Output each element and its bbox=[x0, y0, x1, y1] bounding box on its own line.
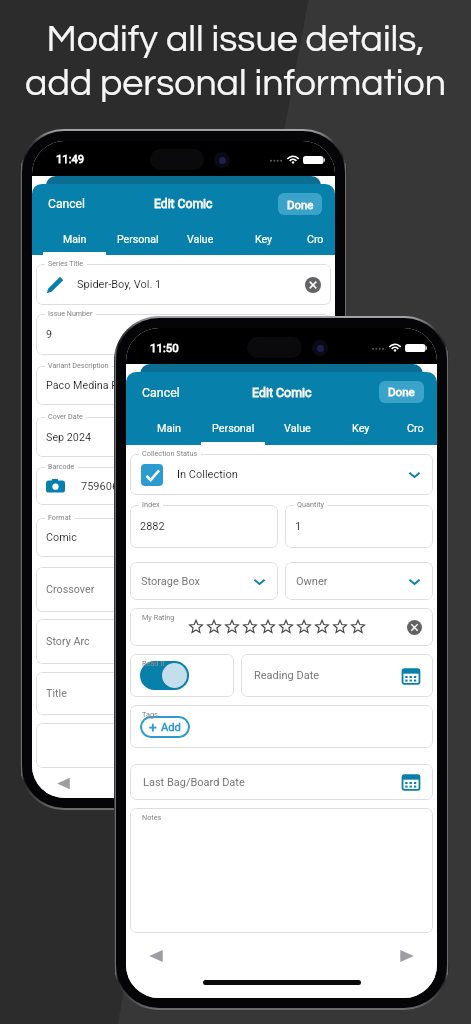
staticText: 11:49 bbox=[56, 153, 85, 166]
button[interactable]: Clear bbox=[130, 608, 433, 646]
staticText: Add bbox=[161, 721, 181, 734]
other: Previous bbox=[148, 948, 164, 964]
staticText: Series Title bbox=[48, 259, 84, 267]
other: Expand bbox=[407, 467, 422, 482]
staticText: Collection Status bbox=[142, 449, 198, 458]
staticText: Done bbox=[287, 198, 314, 211]
button[interactable]: Value bbox=[169, 223, 232, 255]
staticText: Last Bag/Board Date bbox=[143, 776, 245, 789]
other: Previous bbox=[56, 776, 71, 791]
staticText: Owner bbox=[296, 575, 328, 588]
button[interactable]: Value bbox=[265, 412, 329, 445]
staticText: Notes bbox=[142, 813, 162, 822]
staticText: Done bbox=[388, 385, 415, 399]
staticText: 11:50 bbox=[150, 341, 179, 354]
staticText: Key bbox=[352, 422, 370, 435]
staticText: Value bbox=[187, 233, 214, 245]
staticText: Cover Date bbox=[48, 412, 83, 420]
staticText: Crossover bbox=[46, 583, 95, 596]
button[interactable]: Crossover bbox=[36, 567, 331, 612]
button[interactable]: Cancel bbox=[142, 385, 180, 400]
staticText: Edit Comic bbox=[154, 197, 213, 211]
staticText: Tags bbox=[142, 710, 158, 719]
button[interactable]: + bbox=[140, 716, 190, 738]
button[interactable]: Done bbox=[278, 193, 322, 215]
button[interactable]: Main bbox=[43, 223, 106, 255]
button[interactable]: Story Arc bbox=[36, 619, 331, 664]
staticText: Personal bbox=[212, 422, 255, 435]
button[interactable] bbox=[130, 808, 433, 933]
staticText: Cro bbox=[307, 233, 324, 245]
staticText: Personal bbox=[117, 233, 159, 245]
staticText: Variant Description bbox=[48, 361, 109, 369]
button[interactable]: Key bbox=[329, 412, 393, 445]
button[interactable]: + bbox=[130, 705, 433, 748]
staticText: Read It bbox=[142, 659, 165, 668]
button[interactable]: Comic bbox=[36, 518, 331, 557]
other: Clear bbox=[407, 620, 422, 635]
staticText: Value bbox=[284, 422, 311, 435]
staticText: Cro bbox=[407, 422, 424, 435]
other: Scan barcode bbox=[46, 477, 65, 496]
other: Expand bbox=[252, 574, 267, 589]
staticText: Index bbox=[142, 500, 160, 509]
other: Clear bbox=[305, 277, 321, 293]
button[interactable]: 9 bbox=[36, 314, 331, 355]
button[interactable]: Cro bbox=[295, 223, 335, 255]
button[interactable]: Read It toggle bbox=[140, 661, 189, 690]
other: Next bbox=[399, 948, 415, 964]
staticText: In Collection bbox=[177, 468, 238, 481]
staticText: Storage Box bbox=[141, 575, 201, 588]
button[interactable]: Owner bbox=[285, 562, 433, 600]
staticText: Main bbox=[63, 233, 87, 245]
staticText: Key bbox=[255, 233, 273, 245]
staticText: My Rating bbox=[142, 613, 175, 622]
button[interactable]: Personal bbox=[106, 223, 169, 255]
staticText: 759606 bbox=[81, 480, 119, 493]
staticText: Title bbox=[46, 687, 67, 700]
button[interactable]: Read It toggle bbox=[130, 654, 234, 697]
staticText: Paco Medina R bbox=[46, 379, 118, 392]
staticText: Quantity bbox=[297, 500, 325, 509]
other: Expand bbox=[407, 574, 422, 589]
button[interactable]: Title bbox=[36, 672, 331, 715]
staticText: Spider-Boy, Vol. 1 bbox=[77, 278, 162, 291]
button[interactable]: Main bbox=[137, 412, 201, 445]
staticText: Issue Number bbox=[48, 309, 93, 317]
button[interactable]: Sep 2024 bbox=[36, 417, 331, 457]
staticText: Barcode bbox=[48, 462, 75, 470]
button[interactable] bbox=[36, 723, 331, 768]
staticText: Main bbox=[157, 422, 181, 435]
button[interactable]: Cancel bbox=[48, 197, 85, 211]
staticText: Comic bbox=[46, 531, 77, 544]
staticText: Modify all issue details, add personal i… bbox=[0, 20, 471, 103]
button[interactable]: Storage Box bbox=[130, 562, 278, 600]
button[interactable]: Personal bbox=[201, 412, 265, 445]
button[interactable]: 2882 bbox=[130, 505, 278, 548]
staticText: Edit Comic bbox=[252, 385, 312, 400]
staticText: Format bbox=[48, 513, 71, 521]
button[interactable]: In Collection bbox=[130, 454, 433, 495]
staticText: 9 bbox=[46, 328, 53, 341]
button[interactable]: Scan barcode bbox=[36, 467, 331, 505]
button[interactable]: Done bbox=[379, 381, 424, 403]
button[interactable]: Key bbox=[232, 223, 295, 255]
button[interactable]: Paco Medina R bbox=[36, 366, 331, 405]
button[interactable]: Cro bbox=[393, 412, 437, 445]
button[interactable]: Spider-Boy, Vol. 1 bbox=[36, 264, 331, 305]
other: Pick date bbox=[402, 667, 420, 685]
button[interactable]: 1 bbox=[285, 505, 433, 548]
staticText: Sep 2024 bbox=[46, 431, 92, 444]
other: Pick date bbox=[402, 773, 420, 791]
button[interactable]: Reading Date bbox=[241, 654, 433, 697]
staticText: 2882 bbox=[140, 520, 165, 533]
staticText: + bbox=[149, 719, 157, 735]
staticText: Story Arc bbox=[46, 635, 90, 648]
button[interactable]: Last Bag/Board Date bbox=[130, 764, 433, 800]
staticText: Reading Date bbox=[254, 669, 320, 682]
staticText: 1 bbox=[295, 520, 302, 533]
